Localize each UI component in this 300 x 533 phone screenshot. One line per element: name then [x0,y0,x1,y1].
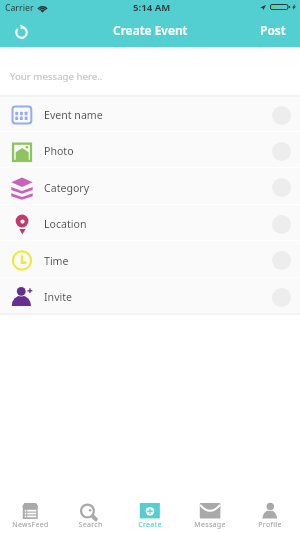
button[interactable]: Time [0,240,300,277]
staticText: NewsFeed [12,520,49,530]
button[interactable]: Create [120,489,180,533]
staticText: Time [44,254,69,268]
button[interactable]: Message [180,489,240,533]
button[interactable]: Invite [0,277,300,313]
button[interactable]: NewsFeed [0,489,60,533]
staticText: Category [44,181,90,195]
staticText: 5:14 AM [133,1,171,14]
button[interactable]: Photo [0,131,300,167]
button[interactable]: Profile [240,489,300,533]
staticText: Your message here.. [10,70,103,83]
staticText: Search [78,520,103,530]
staticText: Carrier [5,2,34,14]
staticText: Message [194,520,226,530]
staticText: Profile [258,520,282,530]
staticText: Create [138,520,162,530]
staticText: Location [44,217,87,231]
button[interactable]: Location [0,204,300,240]
button[interactable]: Post [246,15,300,47]
button[interactable]: Category [0,167,300,204]
staticText: Invite [44,290,73,304]
staticText: Create Event [113,22,188,38]
button[interactable]: Event name [0,95,300,131]
staticText: Event name [44,108,103,122]
button[interactable]: Your message here.. [0,47,300,95]
staticText: Post [260,22,286,38]
button[interactable]: Search [60,489,120,533]
staticText: Photo [44,144,74,158]
button[interactable]: Refresh [6,17,36,47]
